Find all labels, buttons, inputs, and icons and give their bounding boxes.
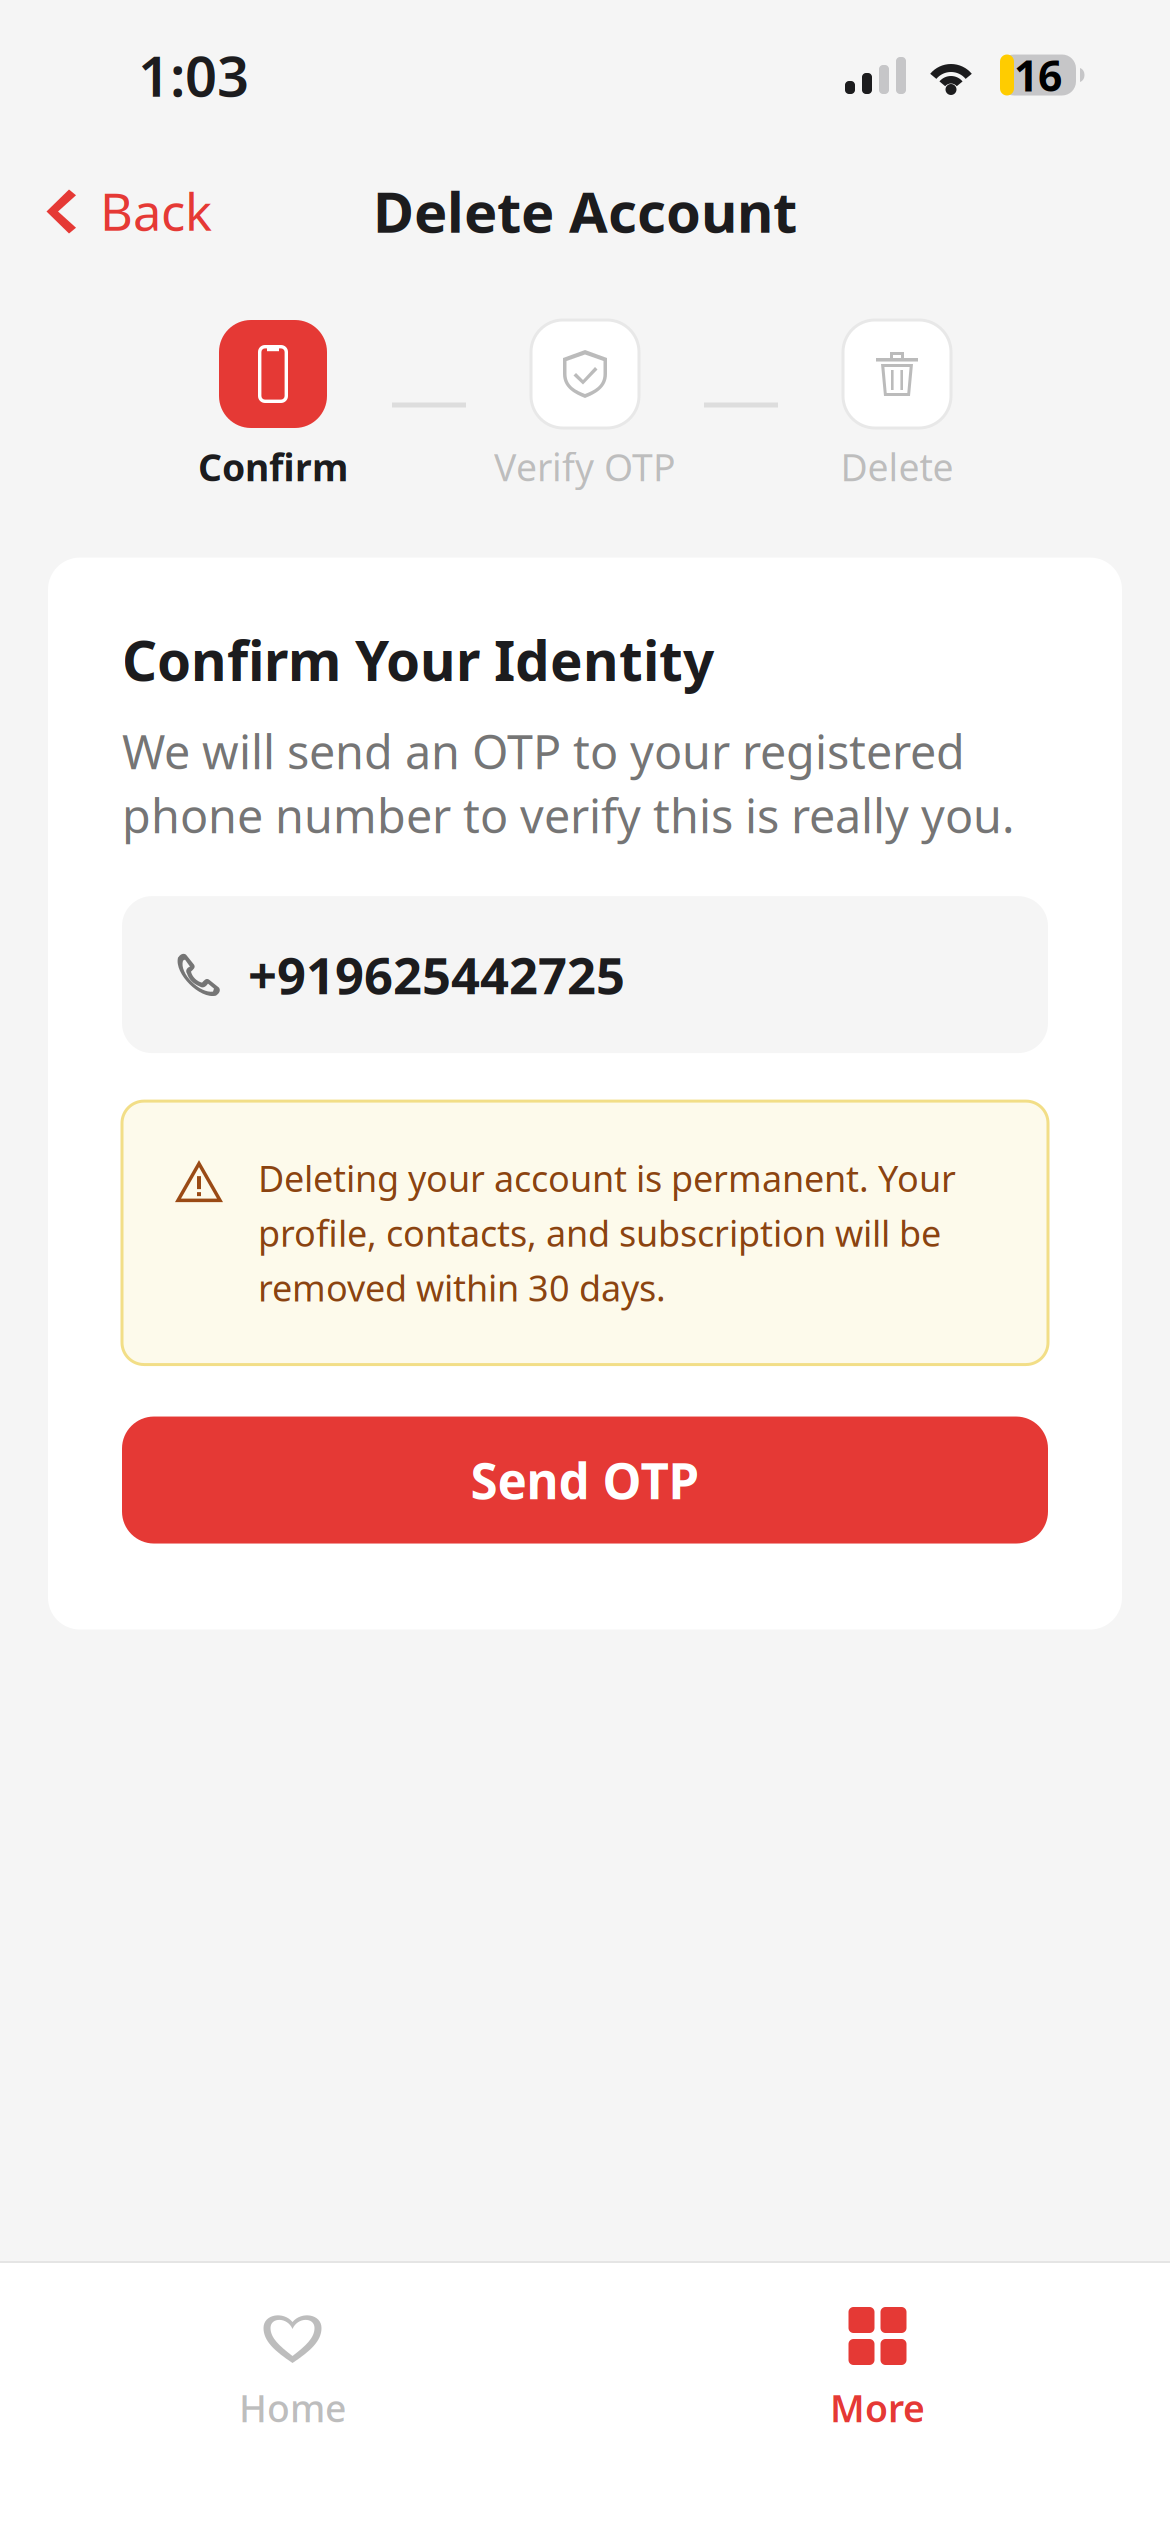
staticText: Back xyxy=(100,177,212,245)
staticText: Confirm xyxy=(198,442,348,492)
staticText: +919625442725 xyxy=(248,941,625,1008)
staticText: Delete Account xyxy=(373,174,797,248)
button[interactable]: More xyxy=(585,2261,1170,2457)
staticText: Deleting your account is permanent. Your… xyxy=(258,1154,956,1311)
button[interactable]: Send OTP xyxy=(122,1416,1048,1543)
staticText: We will send an OTP to your registered p… xyxy=(122,720,1015,846)
button[interactable]: Home xyxy=(0,2261,585,2457)
button[interactable]: Back xyxy=(28,163,228,259)
staticText: Home xyxy=(239,2383,346,2433)
button[interactable]: Delete xyxy=(840,320,953,492)
staticText: 1:03 xyxy=(138,38,249,112)
button[interactable]: Confirm xyxy=(198,320,348,492)
staticText: Verify OTP xyxy=(494,442,676,492)
staticText: More xyxy=(830,2383,925,2433)
button[interactable]: Verify OTP xyxy=(494,320,676,492)
staticText: Confirm Your Identity xyxy=(122,624,714,696)
staticText: 16 xyxy=(1014,47,1062,103)
staticText: Delete xyxy=(840,442,953,492)
staticText: Send OTP xyxy=(470,1447,699,1513)
